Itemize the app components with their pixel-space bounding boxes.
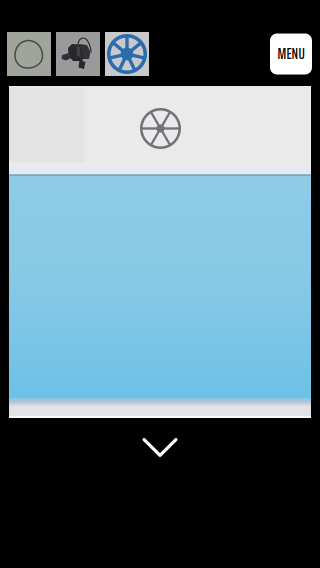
button[interactable]: Wire ring (7, 32, 51, 76)
button[interactable]: Valve wheel (135, 103, 186, 154)
button[interactable]: MENU (270, 33, 312, 74)
staticText: MENU (277, 42, 304, 66)
button[interactable]: Go down (130, 426, 189, 469)
button[interactable]: Binoculars (56, 32, 100, 76)
button[interactable]: Valve handle (105, 32, 149, 76)
